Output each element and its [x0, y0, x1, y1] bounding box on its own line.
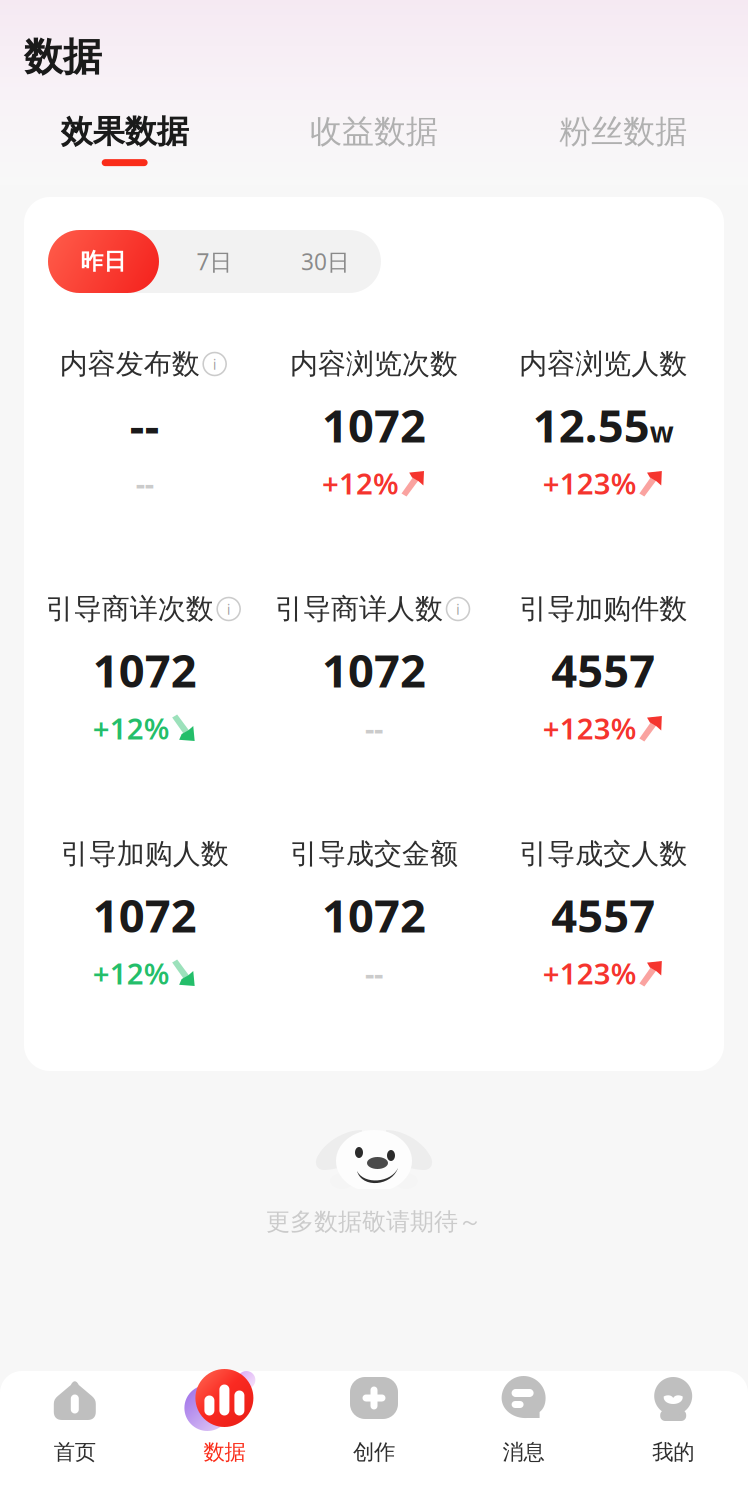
staticText: 引导商详人数 — [275, 592, 443, 626]
staticText: 1072 — [322, 640, 426, 700]
staticText: 引导成交金额 — [290, 837, 458, 871]
staticText: 1072 — [93, 640, 197, 700]
staticText: i — [227, 599, 231, 619]
staticText: 30日 — [301, 246, 350, 276]
staticText: 1072 — [93, 885, 197, 945]
staticText: 内容浏览人数 — [519, 347, 687, 381]
staticText: 引导加购件数 — [519, 592, 687, 626]
staticText: 4557 — [551, 640, 655, 700]
button[interactable]: 数据 — [150, 1371, 299, 1486]
staticText: 引导加购人数 — [61, 837, 229, 871]
staticText: 粉丝数据 — [559, 112, 687, 151]
staticText: 创作 — [353, 1439, 395, 1465]
staticText: +123% — [543, 708, 637, 747]
button[interactable]: 效果数据 — [0, 112, 249, 166]
button[interactable]: 首页 — [0, 1371, 150, 1486]
button[interactable]: 我的 — [598, 1371, 748, 1486]
staticText: 内容发布数 — [60, 347, 200, 381]
staticText: +12% — [322, 463, 399, 502]
staticText: -- — [130, 395, 160, 455]
staticText: w — [650, 413, 674, 450]
staticText: +123% — [543, 953, 637, 992]
staticText: 内容浏览次数 — [290, 347, 458, 381]
staticText: 引导成交人数 — [519, 837, 687, 871]
staticText: -- — [365, 708, 383, 747]
staticText: 4557 — [551, 885, 655, 945]
staticText: 数据 — [24, 33, 102, 81]
staticText: i — [456, 599, 460, 619]
staticText: -- — [136, 463, 154, 502]
staticText: +12% — [93, 708, 170, 747]
staticText: +123% — [543, 463, 637, 502]
staticText: 引导商详次数 — [46, 592, 214, 626]
button[interactable]: 粉丝数据 — [499, 112, 748, 166]
button[interactable]: 7日 — [159, 230, 270, 293]
staticText: 收益数据 — [310, 112, 438, 151]
staticText: 7日 — [196, 246, 232, 276]
staticText: i — [213, 354, 217, 374]
staticText: 更多数据敬请期待～ — [266, 1207, 482, 1236]
staticText: 12.55 — [533, 395, 650, 455]
staticText: 1072 — [322, 395, 426, 455]
staticText: 数据 — [203, 1439, 245, 1465]
staticText: 昨日 — [80, 248, 126, 275]
staticText: -- — [365, 953, 383, 992]
button[interactable]: 30日 — [270, 230, 381, 293]
staticText: 消息 — [503, 1439, 545, 1465]
staticText: 效果数据 — [61, 112, 189, 151]
staticText: +12% — [93, 953, 170, 992]
staticText: 1072 — [322, 885, 426, 945]
button[interactable]: 消息 — [449, 1371, 598, 1486]
staticText: 我的 — [652, 1439, 694, 1465]
button[interactable]: 收益数据 — [249, 112, 499, 166]
button[interactable]: 创作 — [299, 1371, 449, 1486]
button[interactable]: 昨日 — [48, 230, 159, 293]
staticText: 首页 — [54, 1439, 96, 1465]
